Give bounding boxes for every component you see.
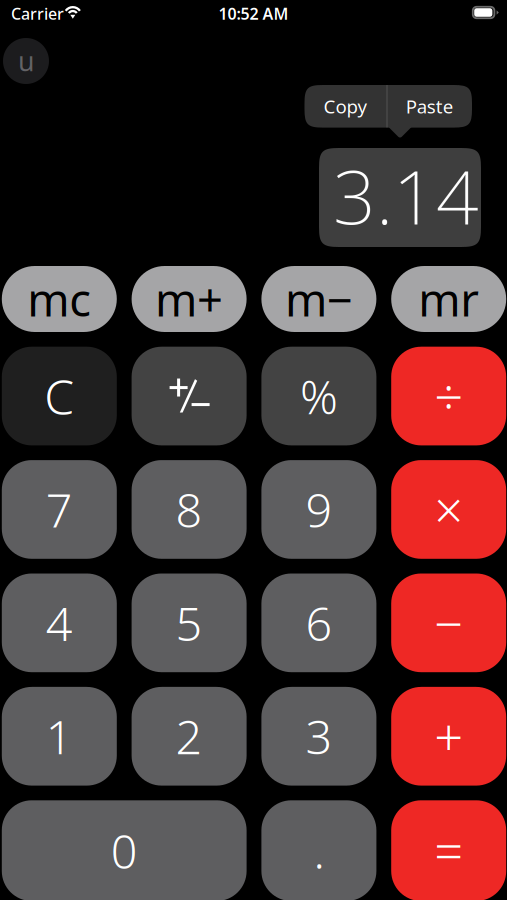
button[interactable]: − (391, 573, 506, 672)
button[interactable]: + (391, 687, 506, 786)
button[interactable]: mc (2, 266, 117, 332)
staticText: 10:52 AM (218, 3, 288, 24)
button[interactable]: 7 (2, 460, 117, 559)
staticText: 6 (305, 592, 332, 654)
staticText: 9 (305, 478, 332, 540)
staticText: 5 (176, 592, 203, 654)
button[interactable]: C (2, 347, 117, 445)
staticText: Copy (323, 94, 367, 119)
staticText: 4 (46, 592, 73, 654)
button[interactable]: Menu (3, 38, 49, 84)
staticText: Carrier (11, 3, 64, 24)
button[interactable]: 2 (132, 687, 247, 786)
staticText: mr (418, 269, 479, 329)
staticText: m− (285, 269, 353, 329)
staticText: u (18, 43, 34, 79)
staticText: = (434, 817, 463, 884)
button[interactable]: 5 (132, 573, 247, 672)
staticText: 3.14 (333, 146, 479, 245)
button[interactable]: mr (391, 266, 506, 332)
button[interactable]: % (261, 347, 376, 445)
button[interactable]: × (391, 460, 506, 559)
button[interactable]: Copy (304, 85, 386, 128)
staticText: C (44, 364, 74, 428)
staticText: mc (27, 269, 91, 329)
button[interactable]: 4 (2, 573, 117, 672)
staticText: Paste (406, 94, 454, 119)
staticText: 0 (111, 820, 138, 882)
button[interactable]: = (391, 800, 506, 900)
staticText: . (313, 820, 324, 882)
staticText: × (434, 476, 463, 543)
button[interactable]: m− (261, 266, 376, 332)
button[interactable]: . (261, 800, 376, 900)
button[interactable]: 9 (261, 460, 376, 559)
button[interactable]: m+ (132, 266, 247, 332)
staticText: − (434, 589, 463, 656)
staticText: + (434, 703, 463, 770)
staticText: 2 (176, 705, 203, 767)
staticText: 8 (176, 478, 203, 540)
button[interactable]: 6 (261, 573, 376, 672)
staticText: 7 (46, 478, 73, 540)
staticText: % (300, 365, 338, 427)
staticText: 1 (46, 705, 73, 767)
button[interactable]: 3 (261, 687, 376, 786)
button[interactable]: 0 (2, 800, 247, 900)
staticText: m+ (155, 269, 223, 329)
button[interactable]: 1 (2, 687, 117, 786)
button[interactable]: Plus Minus (132, 347, 247, 445)
button[interactable]: ÷ (391, 347, 506, 445)
button[interactable]: Paste (387, 85, 472, 128)
staticText: ÷ (434, 362, 463, 430)
staticText: 3 (305, 705, 332, 767)
button[interactable]: 8 (132, 460, 247, 559)
